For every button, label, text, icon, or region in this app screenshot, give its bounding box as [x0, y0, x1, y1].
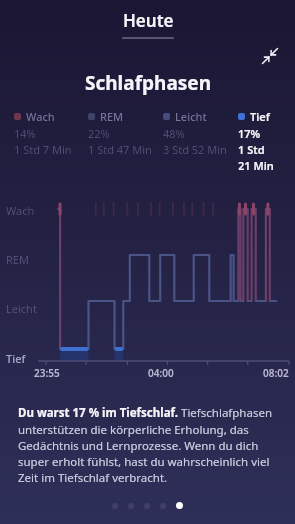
staticText: 04:00 — [148, 366, 174, 380]
staticText: 21 Min — [238, 158, 274, 173]
staticText: 14% — [14, 126, 36, 141]
staticText: Leicht — [6, 301, 37, 316]
staticText: Wach — [6, 203, 35, 218]
staticText: 1 Std 47 Min — [88, 142, 152, 157]
staticText: Leicht — [175, 109, 207, 124]
staticText: Heute — [123, 9, 174, 32]
button[interactable]: Verkleinern — [256, 42, 284, 70]
staticText: Tief — [6, 351, 26, 366]
button[interactable]: Tief — [238, 109, 287, 173]
staticText: REM — [100, 109, 124, 124]
staticText: 08:02 — [263, 366, 289, 380]
button[interactable]: Heute — [114, 8, 182, 40]
staticText: 3 Std 52 Min — [163, 142, 227, 157]
staticText: Tief — [250, 109, 270, 124]
staticText: REM — [6, 252, 29, 267]
staticText: 22% — [88, 126, 110, 141]
button[interactable]: Leicht — [163, 109, 238, 157]
staticText: 1 Std — [238, 142, 265, 157]
button[interactable]: REM — [88, 109, 163, 157]
button[interactable]: Wach — [14, 109, 88, 157]
staticText: Wach — [26, 109, 55, 124]
staticText: 48% — [163, 126, 185, 141]
staticText: Schlafphasen — [85, 70, 211, 96]
staticText: 17% — [238, 126, 261, 141]
staticText: 23:55 — [34, 366, 60, 380]
staticText: Du warst 17 % im Tiefschlaf. Tiefschlafp… — [18, 405, 281, 485]
staticText: 1 Std 7 Min — [14, 142, 72, 157]
